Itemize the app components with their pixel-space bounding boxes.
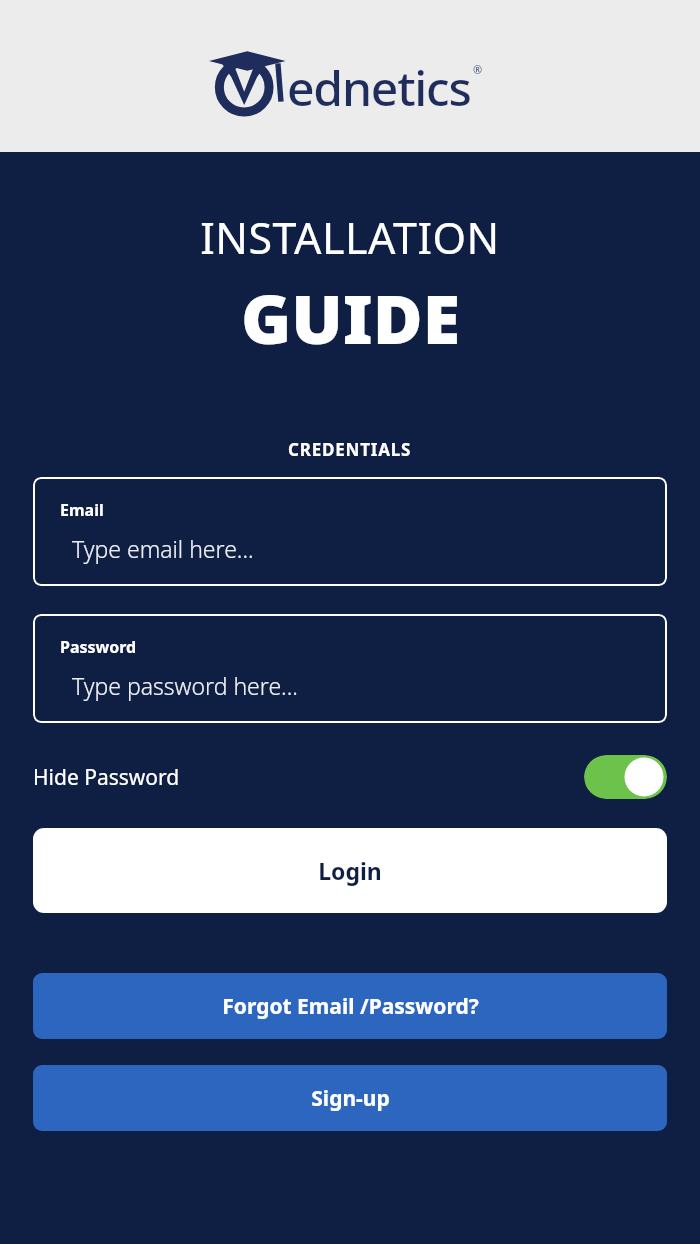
button[interactable]: Login bbox=[33, 828, 667, 913]
button[interactable]: Password input field bbox=[33, 614, 667, 723]
button[interactable]: Forgot Email /Password? bbox=[33, 973, 667, 1039]
button[interactable]: Sign-up bbox=[33, 1065, 667, 1131]
staticText: Sign-up bbox=[311, 1084, 390, 1113]
staticText: GUIDE bbox=[241, 271, 460, 364]
staticText: Forgot Email /Password? bbox=[222, 992, 479, 1021]
staticText: Hide Password bbox=[33, 763, 180, 792]
staticText: ® bbox=[473, 62, 483, 77]
staticText: Type password here... bbox=[72, 670, 298, 701]
staticText: ednetics bbox=[287, 55, 471, 120]
button[interactable]: Email input field bbox=[33, 477, 667, 586]
staticText: INSTALLATION bbox=[200, 208, 500, 267]
other: Ednetics logo bbox=[209, 44, 297, 116]
staticText: Email bbox=[60, 499, 104, 521]
staticText: Password bbox=[60, 636, 137, 658]
button[interactable]: Hide password toggle, on bbox=[584, 755, 667, 799]
button[interactable]: Hide Password bbox=[0, 743, 700, 811]
staticText: Type email here... bbox=[72, 533, 254, 564]
staticText: Login bbox=[318, 855, 382, 886]
staticText: CREDENTIALS bbox=[288, 438, 412, 461]
